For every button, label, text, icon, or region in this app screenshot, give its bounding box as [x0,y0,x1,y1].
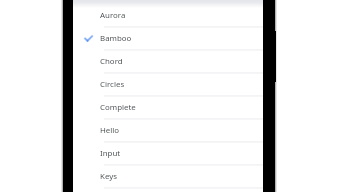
staticText: Input [100,148,121,159]
other: Selected [84,34,93,43]
button[interactable]: Aurora [73,5,263,28]
button[interactable]: Hello [73,120,263,143]
staticText: Bamboo [100,33,132,44]
staticText: Keys [100,171,117,182]
button[interactable]: Chord [73,51,263,74]
staticText: Circles [100,79,125,90]
button[interactable]: Circles [73,74,263,97]
button[interactable]: Input [73,143,263,166]
staticText: Complete [100,102,136,113]
button[interactable]: Selected [73,28,263,51]
button[interactable]: Keys [73,166,263,189]
staticText: Chord [100,56,123,67]
staticText: Aurora [100,10,126,21]
staticText: Hello [100,125,120,136]
button[interactable]: Complete [73,97,263,120]
